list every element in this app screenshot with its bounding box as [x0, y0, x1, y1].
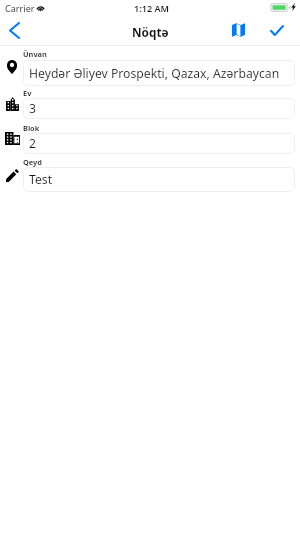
- button[interactable]: 3: [23, 98, 295, 119]
- button[interactable]: Heydər Əliyev Prospekti, Qazax, Azərbayc…: [23, 60, 295, 86]
- button[interactable]: Done: [262, 18, 294, 45]
- staticText: 3: [29, 100, 36, 117]
- staticText: Carrier: [5, 2, 35, 14]
- staticText: Qeyd: [23, 157, 43, 167]
- staticText: Test: [29, 171, 53, 188]
- staticText: Nöqtə: [132, 24, 169, 40]
- staticText: 2: [29, 135, 36, 152]
- staticText: Ev: [23, 88, 32, 98]
- button[interactable]: Back: [0, 18, 29, 45]
- staticText: Blok: [23, 123, 40, 133]
- staticText: Ünvan: [23, 49, 47, 59]
- button[interactable]: 2: [23, 133, 295, 154]
- staticText: Heydər Əliyev Prospekti, Qazax, Azərbayc…: [29, 65, 280, 82]
- staticText: 1:12 AM: [134, 2, 170, 14]
- button[interactable]: Map: [224, 18, 252, 45]
- button[interactable]: Test: [23, 167, 295, 192]
